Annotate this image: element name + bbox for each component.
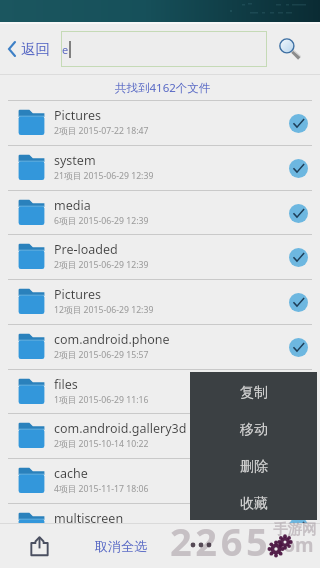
staticText: Pictures xyxy=(54,107,101,124)
button[interactable]: Selected xyxy=(284,504,312,549)
staticText: multiscreen xyxy=(54,510,124,527)
button[interactable]: 返回 xyxy=(4,33,56,65)
staticText: 4项目 2015-11-17 18:06 xyxy=(54,483,149,495)
button[interactable]: Selected xyxy=(284,191,312,236)
staticText: 1项目 2015-06-29 11:16 xyxy=(54,394,149,406)
button[interactable]: multiscreen xyxy=(0,504,320,549)
staticText: .com xyxy=(268,532,314,558)
button[interactable]: Selected xyxy=(284,235,312,280)
staticText: 2项目 2015-06-29 15:57 xyxy=(54,349,149,361)
staticText: 2项目 2015-10-14 10:22 xyxy=(54,438,149,450)
button[interactable]: system xyxy=(0,146,320,191)
staticText: 取消全选 xyxy=(95,538,147,554)
button[interactable]: Selected xyxy=(284,146,312,191)
staticText: 2项目 2015-07-22 18:47 xyxy=(54,125,149,137)
button[interactable]: Pre-loaded xyxy=(0,235,320,280)
staticText: e xyxy=(62,42,69,57)
button[interactable]: Share xyxy=(16,523,62,568)
staticText: 删除 xyxy=(240,458,268,476)
button[interactable]: Search xyxy=(268,30,312,68)
staticText: Pictures xyxy=(54,286,101,303)
staticText: 返回 xyxy=(21,40,50,58)
staticText: 2265 xyxy=(170,515,272,567)
button[interactable]: Selected xyxy=(284,280,312,325)
button[interactable]: Pictures xyxy=(0,101,320,146)
button[interactable]: e xyxy=(61,31,267,67)
staticText: 复制 xyxy=(240,384,268,402)
staticText: 手游网 xyxy=(273,520,317,538)
staticText: Pre-loaded xyxy=(54,241,118,258)
button[interactable]: 收藏 xyxy=(190,485,317,522)
button[interactable]: media xyxy=(0,191,320,236)
button[interactable]: com.android.phone xyxy=(0,325,320,370)
staticText: 12项目 2015-06-29 12:39 xyxy=(54,304,154,316)
staticText: 收藏 xyxy=(240,495,268,513)
button[interactable]: 删除 xyxy=(190,448,317,485)
button[interactable]: com.android.gallery3d xyxy=(0,414,320,459)
staticText: cache xyxy=(54,465,88,482)
button[interactable]: Selected xyxy=(284,325,312,370)
staticText: 21项目 2015-06-29 12:39 xyxy=(54,170,154,182)
staticText: system xyxy=(54,152,96,169)
staticText: 6项目 2015-06-29 12:39 xyxy=(54,215,149,227)
button[interactable]: Selected xyxy=(284,370,312,415)
staticText: com.android.gallery3d xyxy=(54,420,187,437)
staticText: com.android.phone xyxy=(54,331,170,348)
staticText: 移动 xyxy=(240,421,268,439)
staticText: 2项目 2015-06-29 12:39 xyxy=(54,259,149,271)
button[interactable]: 移动 xyxy=(190,411,317,448)
staticText: media xyxy=(54,197,91,214)
button[interactable]: Selected xyxy=(284,101,312,146)
button[interactable]: cache xyxy=(0,459,320,504)
button[interactable]: 取消全选 xyxy=(83,523,159,568)
staticText: files xyxy=(54,376,78,393)
button[interactable]: files xyxy=(0,370,320,415)
button[interactable]: Pictures xyxy=(0,280,320,325)
staticText: 共找到4162个文件 xyxy=(115,80,211,96)
button[interactable]: 复制 xyxy=(190,374,317,411)
